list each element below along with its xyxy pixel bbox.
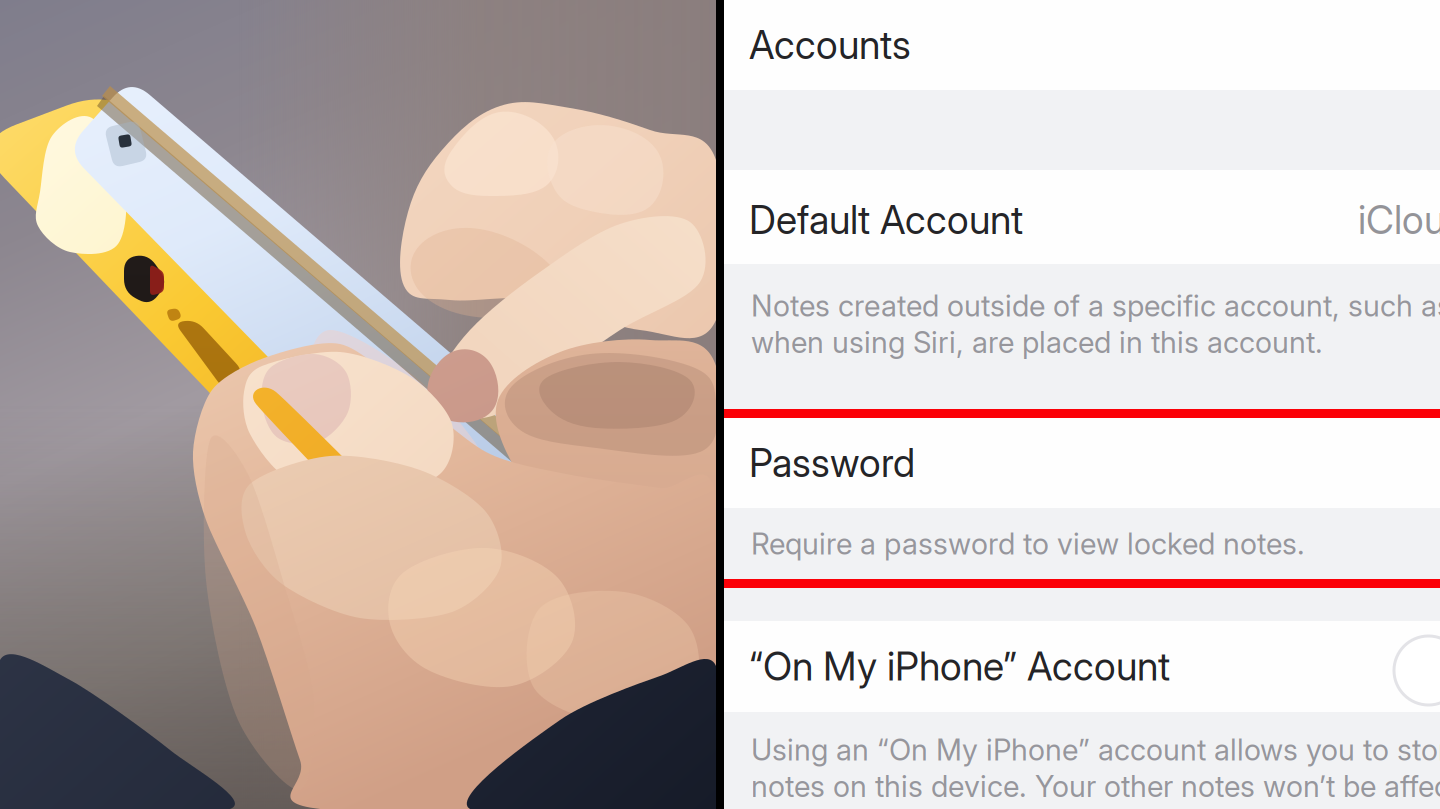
- staticText: when using Siri, are placed in this acco…: [751, 324, 1323, 360]
- staticText: notes on this device. Your other notes w…: [751, 768, 1440, 804]
- button[interactable]: Default Account: [724, 170, 1440, 264]
- staticText: iCloud: [1358, 197, 1440, 243]
- staticText: Default Account: [749, 197, 1023, 243]
- button[interactable]: Password: [724, 418, 1440, 508]
- staticText: “On My iPhone” Account: [749, 643, 1170, 690]
- staticText: Notes created outside of a specific acco…: [751, 288, 1440, 323]
- staticText: Password: [749, 440, 915, 486]
- staticText: Require a password to view locked notes.: [751, 526, 1305, 561]
- staticText: Using an “On My iPhone” account allows y…: [751, 732, 1440, 767]
- staticText: Accounts: [749, 22, 911, 68]
- button[interactable]: “On My iPhone” Account: [724, 621, 1440, 712]
- button[interactable]: Accounts: [724, 0, 1440, 90]
